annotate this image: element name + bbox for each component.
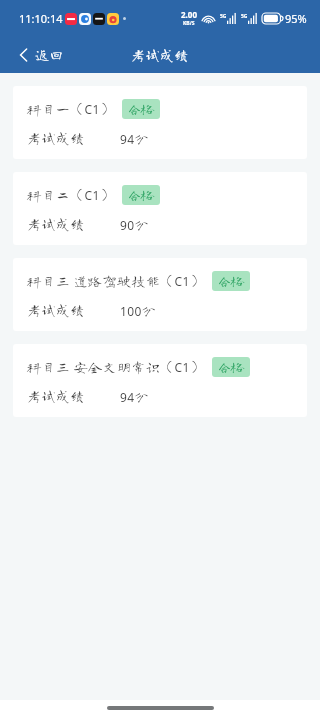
staticText: 合格 [218, 275, 245, 288]
staticText: 合格 [128, 189, 155, 202]
staticText: 科目二（C1） [27, 187, 115, 203]
staticText: 5G [220, 13, 227, 20]
staticText: 5G [241, 13, 248, 20]
staticText: 科目三 安全文明常识（C1） [27, 359, 205, 375]
staticText: 2.00 [181, 9, 197, 20]
staticText: 考试成绩 [27, 131, 85, 145]
staticText: 94分 [120, 389, 149, 405]
staticText: 合格 [128, 103, 155, 116]
button[interactable]: 科目三 道路驾驶技能（C1） [13, 258, 307, 331]
button[interactable]: 返回 [14, 42, 70, 68]
staticText: 合格 [218, 361, 245, 374]
staticText: 返回 [35, 48, 64, 62]
staticText: 100分 [120, 303, 157, 319]
staticText: 95% [285, 11, 307, 26]
button[interactable]: 科目一（C1） [13, 86, 307, 159]
staticText: 11:10:14 [19, 11, 63, 26]
button[interactable]: 科目二（C1） [13, 172, 307, 245]
other: 返回 [20, 49, 27, 61]
staticText: 考试成绩 [131, 48, 189, 62]
staticText: 考试成绩 [27, 389, 85, 403]
staticText: KB/S [183, 20, 195, 27]
staticText: 90分 [120, 217, 149, 233]
button[interactable]: 科目三 安全文明常识（C1） [13, 344, 307, 417]
staticText: 94分 [120, 131, 149, 147]
staticText: 科目一（C1） [27, 101, 115, 117]
staticText: 科目三 道路驾驶技能（C1） [27, 273, 205, 289]
staticText: 考试成绩 [27, 303, 85, 317]
staticText: 考试成绩 [27, 217, 85, 231]
